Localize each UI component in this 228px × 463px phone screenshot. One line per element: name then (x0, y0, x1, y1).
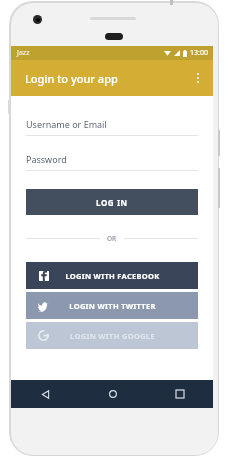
button[interactable]: Password (26, 153, 198, 171)
button[interactable]: LOG IN (26, 189, 198, 215)
staticText: 13:00 (190, 48, 208, 58)
button[interactable]: LOGIN WITH FACEBOOK (26, 262, 198, 289)
staticText: Username or Email (26, 118, 107, 130)
staticText: Password (26, 153, 67, 165)
staticText: LOG IN (96, 197, 128, 208)
staticText: OR (107, 234, 117, 243)
staticText: LOGIN WITH TWITTER (69, 301, 156, 311)
button[interactable]: LOGIN WITH TWITTER (26, 292, 198, 319)
staticText: LOGIN WITH FACEBOOK (65, 271, 160, 281)
staticText: LOGIN WITH GOOGLE (70, 331, 155, 341)
staticText: Login to your app (25, 71, 118, 86)
button[interactable]: Username or Email (26, 118, 198, 136)
button[interactable]: Back (11, 380, 79, 408)
button[interactable]: Home (79, 380, 146, 408)
button[interactable]: More options (183, 63, 213, 93)
button[interactable]: LOGIN WITH GOOGLE (26, 322, 198, 349)
button[interactable]: Recent apps (146, 380, 213, 408)
staticText: Jazz (17, 48, 30, 58)
